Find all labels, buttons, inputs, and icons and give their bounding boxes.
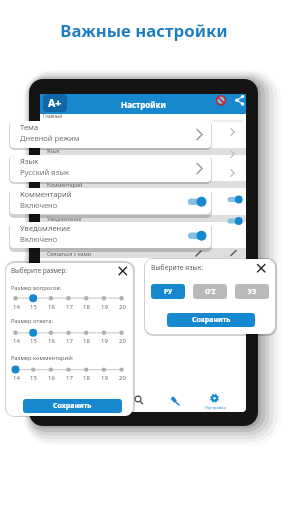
staticText: 16 bbox=[48, 303, 55, 311]
staticText: 15 bbox=[30, 303, 37, 311]
staticText: Связаться с нами bbox=[47, 250, 91, 257]
staticText: Сохранить bbox=[192, 315, 231, 325]
staticText: Комментарий bbox=[20, 189, 72, 199]
staticText: Сохранить bbox=[53, 401, 92, 411]
staticText: 18 bbox=[83, 303, 90, 311]
staticText: 16 bbox=[48, 374, 55, 382]
staticText: 17 bbox=[66, 374, 73, 382]
staticText: 17 bbox=[66, 303, 73, 311]
staticText: Выберите язык: bbox=[151, 263, 204, 272]
staticText: Уведомление bbox=[20, 223, 71, 233]
staticText: 18 bbox=[83, 374, 90, 382]
staticText: 19 bbox=[101, 303, 108, 311]
staticText: 19 bbox=[101, 374, 108, 382]
button[interactable]: Настройки bbox=[40, 94, 246, 114]
staticText: A+ bbox=[48, 96, 62, 110]
staticText: 14 bbox=[13, 337, 20, 345]
staticText: 15 bbox=[30, 374, 37, 382]
staticText: Тема bbox=[20, 122, 39, 132]
staticText: Главный bbox=[43, 113, 63, 119]
staticText: Комментарий bbox=[47, 181, 83, 188]
button[interactable]: Сохранить bbox=[23, 399, 122, 413]
staticText: 20 bbox=[119, 303, 126, 311]
staticText: 20 bbox=[119, 374, 126, 382]
button[interactable]: УЗ bbox=[235, 284, 269, 299]
button[interactable]: Уведомление bbox=[10, 222, 211, 248]
staticText: Язык bbox=[47, 147, 60, 154]
staticText: Дневной режим bbox=[20, 133, 80, 143]
staticText: Включено bbox=[20, 234, 58, 244]
staticText: 15 bbox=[30, 337, 37, 345]
staticText: 14 bbox=[13, 303, 20, 311]
staticText: 17 bbox=[66, 337, 73, 345]
button[interactable]: Комментарий bbox=[10, 188, 211, 214]
staticText: Размер комментарий: bbox=[11, 354, 74, 362]
staticText: РУ bbox=[164, 287, 173, 296]
staticText: Язык bbox=[20, 156, 39, 166]
staticText: Русский язык bbox=[20, 167, 69, 177]
button[interactable]: Тема bbox=[10, 121, 211, 148]
button[interactable]: Сохранить bbox=[167, 313, 255, 327]
staticText: Настройки bbox=[121, 99, 166, 110]
staticText: O'Z bbox=[205, 287, 216, 296]
staticText: 16 bbox=[48, 337, 55, 345]
staticText: Включено bbox=[20, 200, 58, 210]
button[interactable]: Язык bbox=[10, 155, 211, 182]
staticText: 14 bbox=[13, 374, 20, 382]
staticText: 19 bbox=[101, 337, 108, 345]
button[interactable] bbox=[116, 264, 132, 280]
staticText: Важные настройки bbox=[60, 19, 228, 42]
staticText: УЗ bbox=[248, 287, 257, 296]
staticText: Уведомление bbox=[47, 215, 82, 222]
staticText: Настройки bbox=[205, 405, 226, 410]
staticText: Размер вопросов: bbox=[11, 284, 62, 292]
button[interactable]: A+ bbox=[43, 94, 67, 112]
button[interactable]: O'Z bbox=[193, 284, 227, 299]
button[interactable] bbox=[253, 261, 269, 277]
button[interactable]: РУ bbox=[151, 284, 185, 299]
staticText: 20 bbox=[119, 337, 126, 345]
staticText: 18 bbox=[83, 337, 90, 345]
staticText: Выберите размер: bbox=[11, 266, 68, 275]
staticText: Размер ответа: bbox=[11, 317, 54, 325]
